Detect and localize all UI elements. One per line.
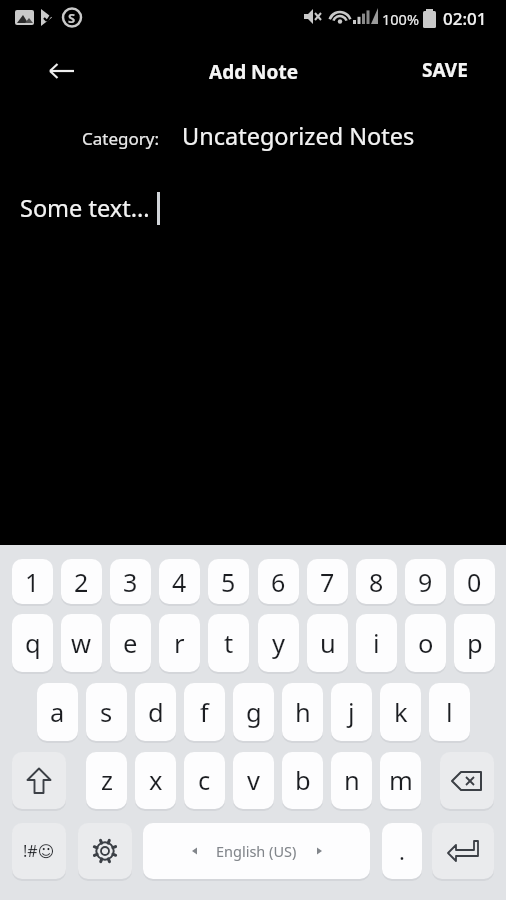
button[interactable]: e <box>110 614 151 672</box>
staticText: 100% <box>382 9 419 29</box>
button[interactable] <box>75 112 425 160</box>
staticText: Add Note <box>209 59 299 85</box>
button[interactable]: c <box>184 752 225 809</box>
staticText: Uncategorized Notes <box>182 120 415 152</box>
staticText: r <box>174 626 185 661</box>
button[interactable]: b <box>282 752 323 809</box>
button[interactable]: . <box>382 823 422 879</box>
staticText: 8 <box>369 565 384 599</box>
staticText: i <box>373 626 380 661</box>
button[interactable] <box>440 752 494 809</box>
button[interactable]: 8 <box>356 559 397 604</box>
button[interactable]: w <box>61 614 102 672</box>
button[interactable]: x <box>135 752 176 809</box>
staticText: o <box>418 626 434 661</box>
button[interactable]: u <box>307 614 348 672</box>
button[interactable]: 5 <box>208 559 249 604</box>
button[interactable]: a <box>37 683 78 741</box>
button[interactable]: 2 <box>61 559 102 604</box>
staticText: h <box>295 695 311 730</box>
button[interactable]: q <box>12 614 53 672</box>
button[interactable]: i <box>356 614 397 672</box>
staticText: a <box>50 695 65 730</box>
staticText: t <box>224 626 234 661</box>
button[interactable]: 1 <box>12 559 53 604</box>
staticText: v <box>247 763 260 798</box>
button[interactable]: r <box>159 614 200 672</box>
button[interactable] <box>78 823 132 879</box>
staticText: s <box>100 695 113 730</box>
button[interactable]: m <box>380 752 421 809</box>
button[interactable]: 7 <box>307 559 348 604</box>
button[interactable]: l <box>429 683 470 741</box>
button[interactable]: !#☺ <box>12 823 66 879</box>
staticText: 2 <box>74 565 89 599</box>
button[interactable] <box>12 752 66 809</box>
staticText: 02:01 <box>443 7 487 30</box>
staticText: Category: <box>82 127 159 150</box>
staticText: d <box>148 695 164 730</box>
staticText: Some text... <box>20 192 150 224</box>
staticText: b <box>295 763 311 798</box>
button[interactable]: p <box>454 614 495 672</box>
button[interactable]: 0 <box>454 559 495 604</box>
staticText: u <box>320 626 336 661</box>
staticText: 1 <box>25 565 40 599</box>
staticText: q <box>25 626 41 661</box>
button[interactable]: 6 <box>258 559 299 604</box>
button[interactable] <box>432 823 494 879</box>
button[interactable]: o <box>405 614 446 672</box>
staticText: k <box>394 695 408 730</box>
staticText: p <box>467 626 483 661</box>
button[interactable]: v <box>233 752 274 809</box>
button[interactable]: f <box>184 683 225 741</box>
button[interactable]: English (US) <box>143 823 370 879</box>
button[interactable]: j <box>331 683 372 741</box>
staticText: m <box>389 763 413 798</box>
staticText: 6 <box>271 565 286 599</box>
staticText: !#☺ <box>23 840 55 862</box>
staticText: g <box>246 695 262 730</box>
staticText: . <box>399 836 405 866</box>
staticText: z <box>101 763 113 798</box>
button[interactable]: 9 <box>405 559 446 604</box>
button[interactable]: g <box>233 683 274 741</box>
button[interactable]: SAVE <box>405 52 485 88</box>
staticText: y <box>272 626 286 661</box>
staticText: f <box>200 695 209 730</box>
staticText: SAVE <box>422 57 468 83</box>
staticText: c <box>198 763 211 798</box>
button[interactable] <box>36 56 86 86</box>
staticText: x <box>149 763 163 798</box>
staticText: 9 <box>418 565 433 599</box>
staticText: j <box>348 695 355 730</box>
button[interactable]: k <box>380 683 421 741</box>
button[interactable]: n <box>331 752 372 809</box>
staticText: e <box>123 626 138 661</box>
button[interactable]: d <box>135 683 176 741</box>
staticText: l <box>446 695 453 730</box>
button[interactable]: 3 <box>110 559 151 604</box>
staticText: 4 <box>172 565 187 599</box>
button[interactable]: z <box>86 752 127 809</box>
button[interactable]: h <box>282 683 323 741</box>
staticText: 7 <box>320 565 335 599</box>
staticText: English (US) <box>216 841 297 861</box>
staticText: 5 <box>221 565 236 599</box>
staticText: n <box>344 763 360 798</box>
button[interactable]: s <box>86 683 127 741</box>
button[interactable] <box>0 170 506 545</box>
button[interactable]: y <box>258 614 299 672</box>
button[interactable]: t <box>208 614 249 672</box>
staticText: 0 <box>467 565 482 599</box>
staticText: S <box>68 9 76 27</box>
staticText: w <box>71 626 92 661</box>
button[interactable]: 4 <box>159 559 200 604</box>
staticText: 3 <box>123 565 138 599</box>
